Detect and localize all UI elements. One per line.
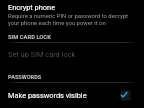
staticText: Require a numeric PIN or password to dec…: [8, 13, 128, 26]
staticText: Encrypt phone: [8, 3, 56, 12]
staticText: SIM CARD LOCK: [8, 34, 51, 41]
button[interactable]: Encrypt phone: [0, 0, 144, 31]
other: Make passwords visible: [119, 89, 131, 101]
button[interactable]: Make passwords visible: [0, 85, 144, 105]
staticText: PASSWORDS: [8, 74, 42, 81]
button[interactable]: Set up SIM card lock: [0, 45, 144, 63]
staticText: Make passwords visible: [8, 91, 119, 100]
staticText: Set up SIM card lock: [8, 50, 76, 59]
